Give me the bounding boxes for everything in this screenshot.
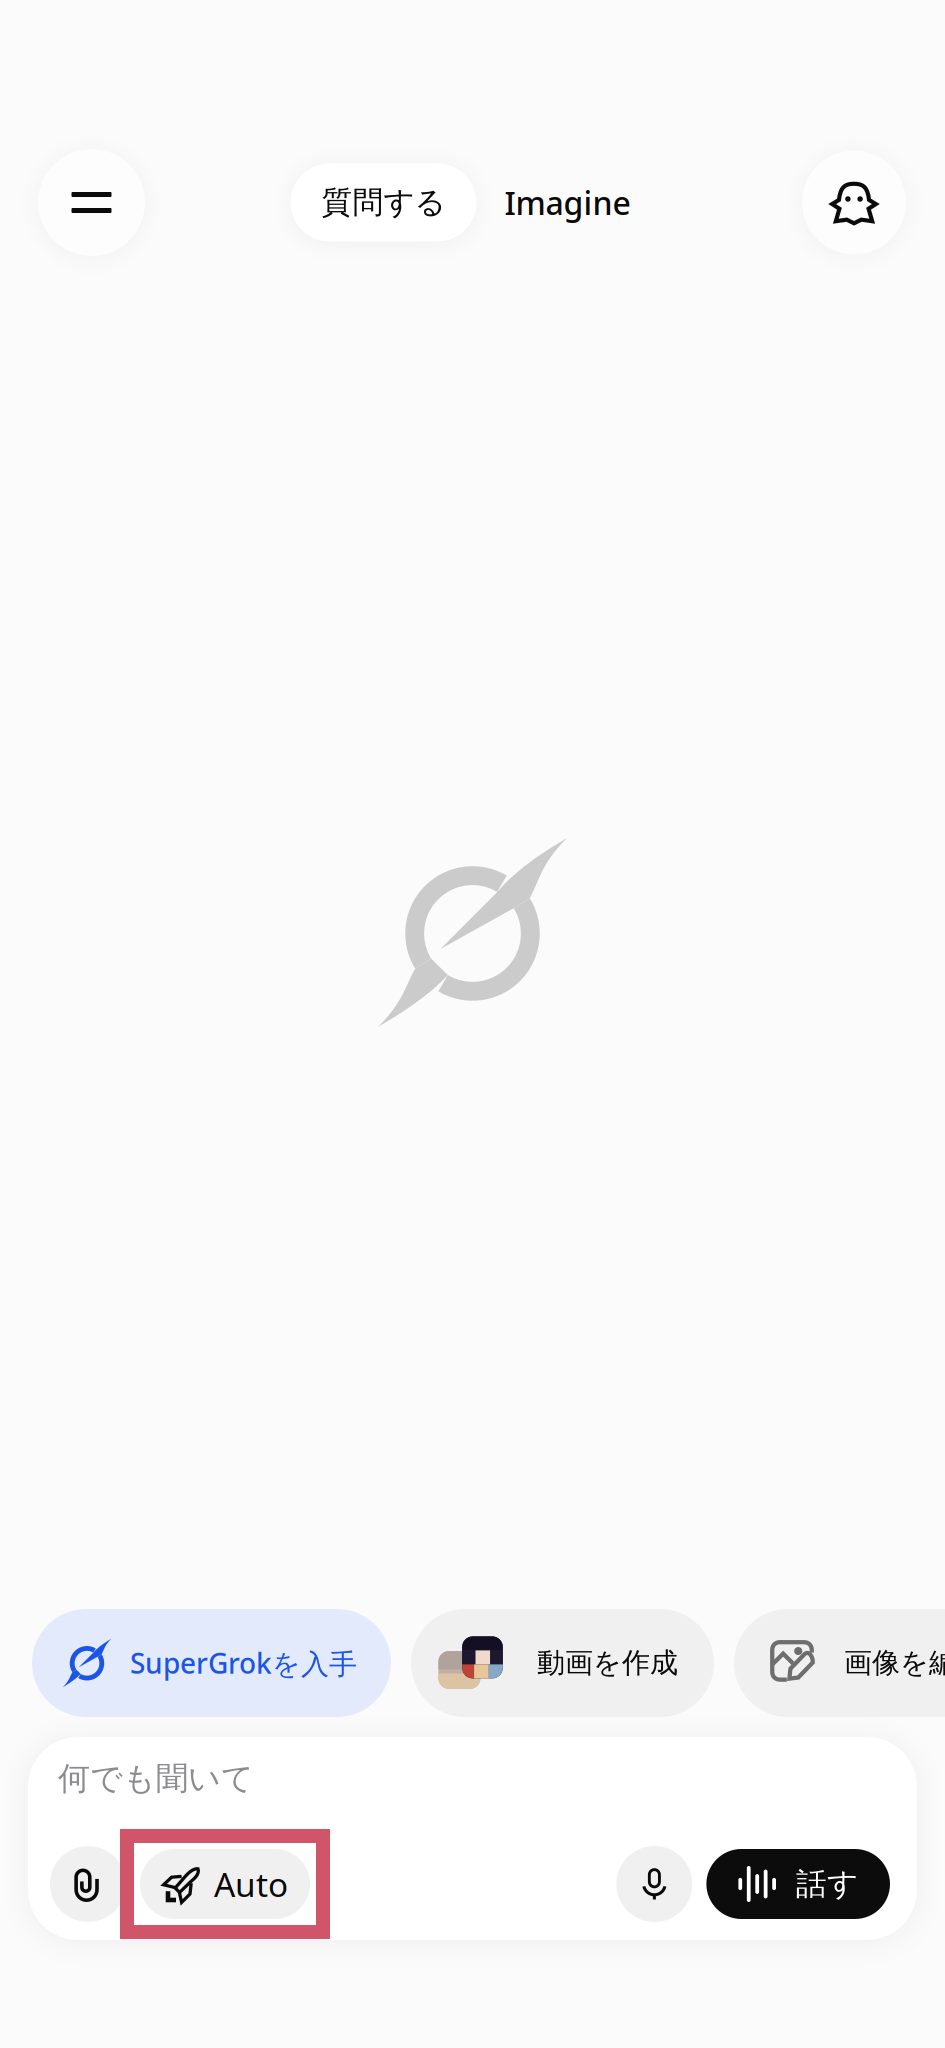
staticText: SuperGrokを入手 <box>130 1644 357 1682</box>
button[interactable]: 画像を編集 <box>734 1609 945 1717</box>
staticText: 画像を編集 <box>844 1646 945 1680</box>
button[interactable]: Dictate <box>616 1846 692 1922</box>
staticText: 質問する <box>321 184 445 221</box>
button[interactable]: 質問する <box>290 163 476 241</box>
button[interactable]: 動画を作成 <box>411 1609 714 1717</box>
button[interactable]: Auto <box>140 1849 310 1919</box>
staticText: 何でも聞いて <box>58 1759 254 1798</box>
staticText: Imagine <box>504 181 630 224</box>
button[interactable]: Imagine <box>478 161 656 244</box>
button[interactable]: Attach file <box>50 1846 126 1922</box>
button[interactable]: Menu <box>38 149 145 256</box>
button[interactable]: SuperGrokを入手 <box>32 1609 391 1717</box>
button[interactable]: Private chat <box>802 150 906 254</box>
button[interactable]: 話す <box>706 1849 890 1919</box>
staticText: Auto <box>214 1862 288 1906</box>
staticText: 話す <box>796 1865 858 1903</box>
staticText: 動画を作成 <box>537 1646 678 1680</box>
